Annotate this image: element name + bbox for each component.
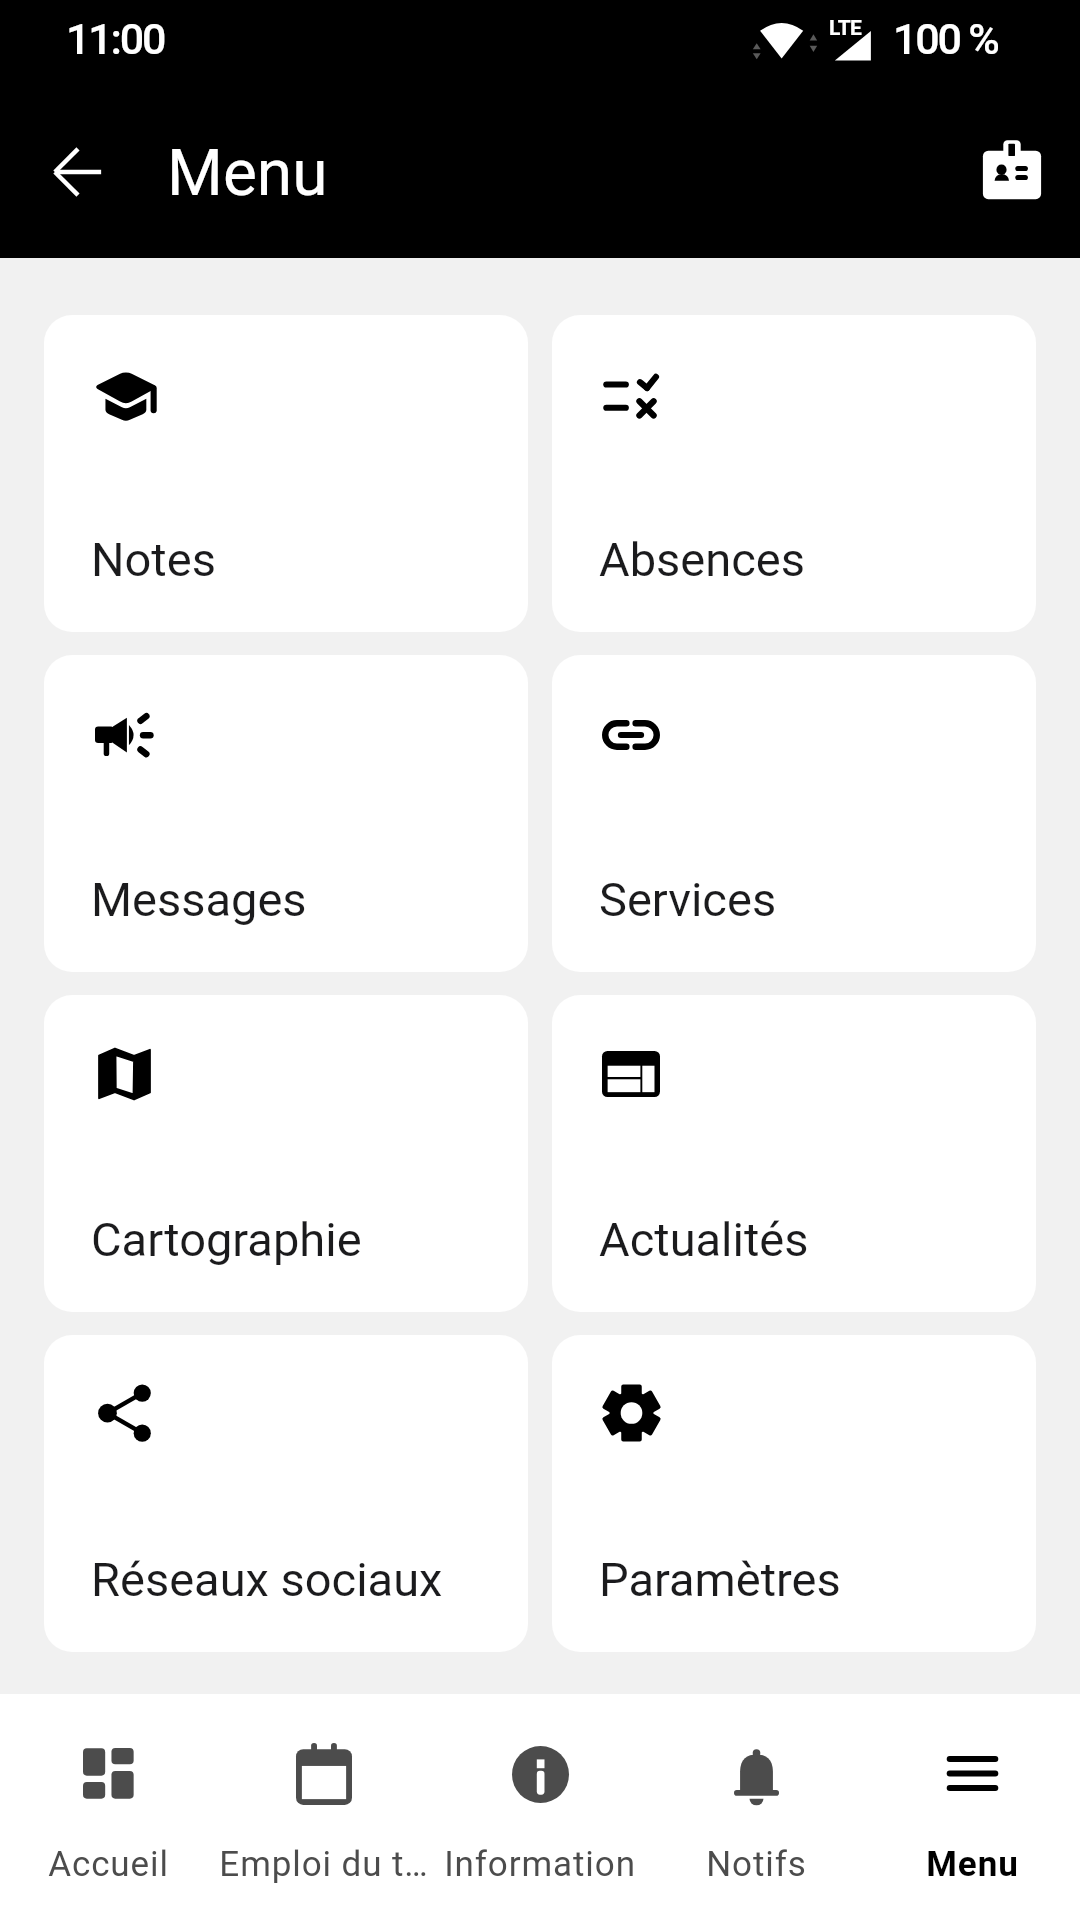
button[interactable]: Notifs <box>648 1694 864 1920</box>
button[interactable]: Actualités <box>552 995 1036 1312</box>
button[interactable]: Cartographie <box>44 995 528 1312</box>
button[interactable]: Emploi du t… <box>216 1694 432 1920</box>
staticText: Actualités <box>599 1212 809 1267</box>
staticText: Information <box>444 1844 636 1885</box>
button[interactable]: Notes <box>44 315 528 632</box>
button[interactable]: Paramètres <box>552 1335 1036 1652</box>
staticText: LTE <box>829 16 862 41</box>
staticText: Cartographie <box>91 1212 362 1267</box>
button[interactable]: Menu <box>864 1694 1080 1920</box>
staticText: Notifs <box>706 1844 807 1885</box>
button[interactable]: Information <box>432 1694 648 1920</box>
button[interactable]: Absences <box>552 315 1036 632</box>
button[interactable]: Accueil <box>0 1694 216 1920</box>
staticText: 11:00 <box>66 14 165 64</box>
staticText: Menu <box>167 136 328 211</box>
staticText: Réseaux sociaux <box>91 1552 443 1607</box>
staticText: Paramètres <box>599 1552 841 1607</box>
button[interactable]: Back <box>34 128 122 216</box>
staticText: 100 % <box>893 14 998 64</box>
button[interactable]: Réseaux sociaux <box>44 1335 528 1652</box>
staticText: Accueil <box>48 1844 169 1885</box>
staticText: Services <box>599 872 777 927</box>
button[interactable]: Badge <box>962 122 1062 222</box>
button[interactable]: Messages <box>44 655 528 972</box>
staticText: Menu <box>926 1844 1019 1885</box>
staticText: Emploi du t… <box>219 1844 429 1885</box>
staticText: Messages <box>91 872 307 927</box>
staticText: Notes <box>91 532 216 587</box>
button[interactable]: Services <box>552 655 1036 972</box>
staticText: Absences <box>599 532 805 587</box>
